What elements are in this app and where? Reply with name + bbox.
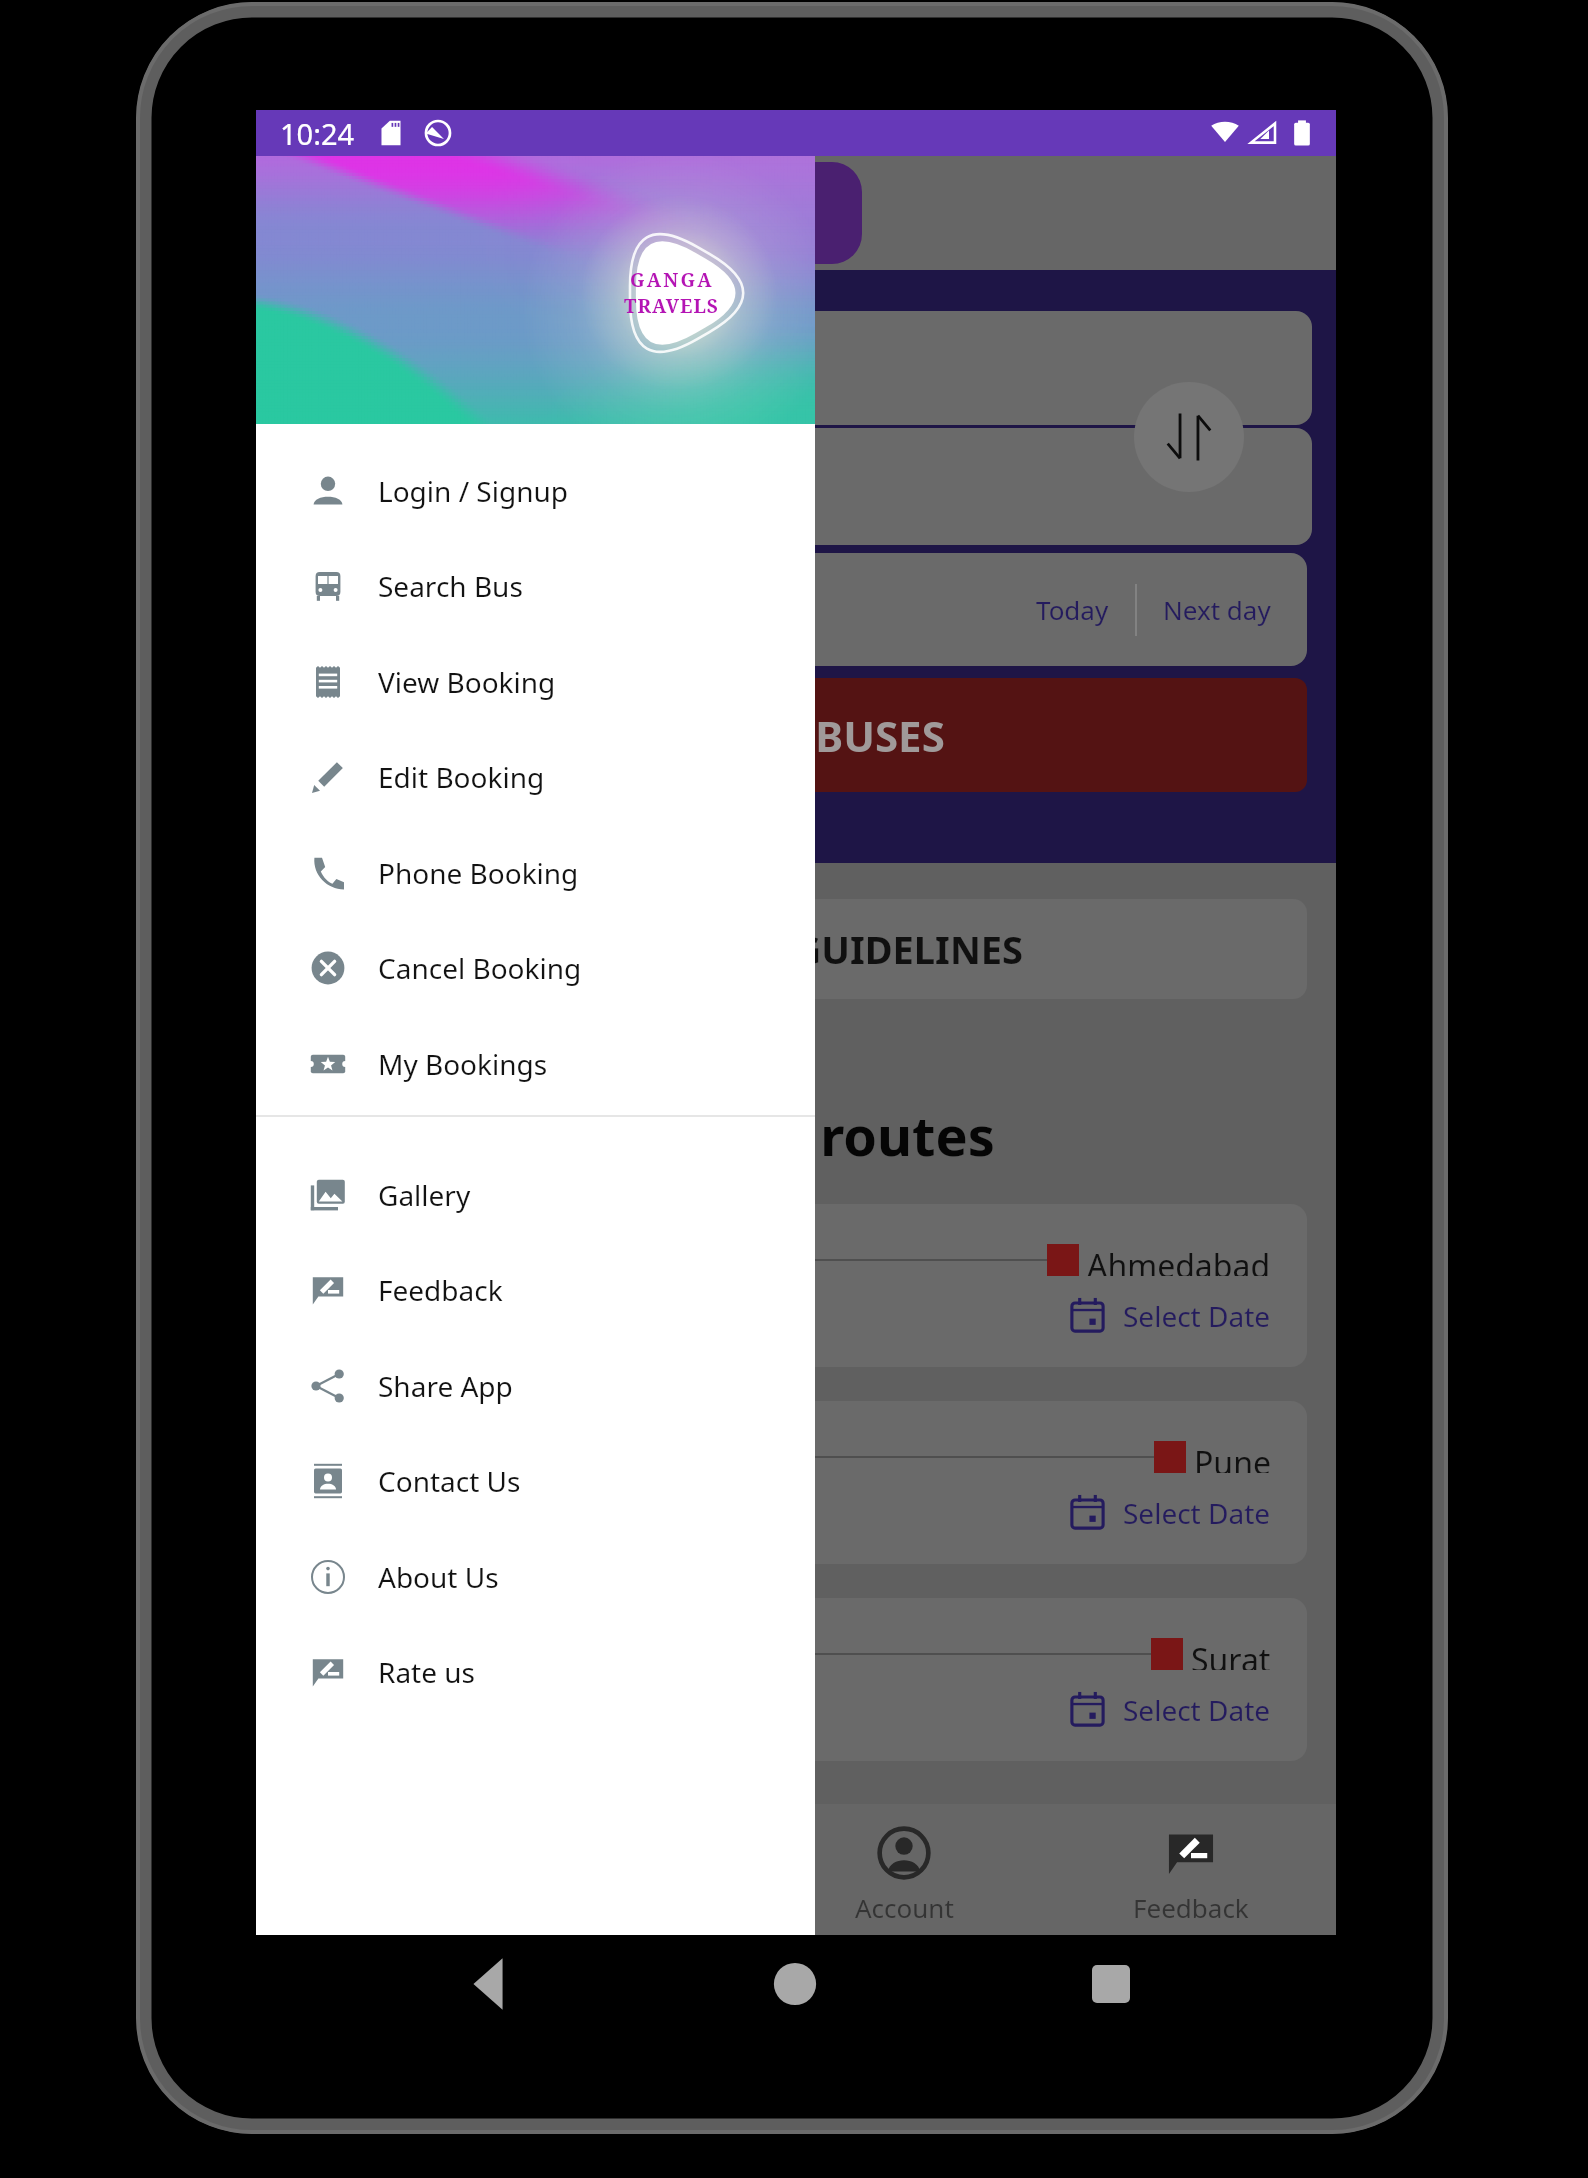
- staticText: Feedback: [378, 1271, 503, 1309]
- staticText: From: [314, 330, 368, 360]
- staticText: Cancel Booking: [378, 949, 582, 987]
- staticText: SEARCH BUSES: [642, 707, 945, 764]
- button[interactable]: Next day: [1151, 582, 1283, 637]
- staticText: Gallery: [378, 1176, 471, 1214]
- button[interactable]: Account: [814, 1824, 994, 1925]
- staticText: Feedback: [1133, 1890, 1249, 1925]
- button[interactable]: Ahmedabad: [280, 1204, 1307, 1367]
- staticText: Share App: [378, 1367, 513, 1405]
- button[interactable]: Phone Booking: [256, 825, 815, 920]
- button[interactable]: Swap source and destination: [1134, 382, 1244, 492]
- staticText: COVID SAFE GUIDELINES: [564, 923, 1024, 975]
- staticText: 10:24: [280, 114, 355, 153]
- button[interactable]: Edit Booking: [256, 729, 815, 824]
- button[interactable]: Select Date: [1068, 1491, 1271, 1534]
- staticText: Contact Us: [378, 1462, 521, 1500]
- button[interactable]: Share App: [256, 1338, 815, 1433]
- button[interactable]: From: [280, 311, 1312, 425]
- button[interactable]: Login / Signup: [256, 443, 815, 538]
- button[interactable]: COVID SAFE GUIDELINES: [280, 899, 1307, 999]
- staticText: Surat: [1191, 1638, 1271, 1670]
- button[interactable]: Open navigation menu: [282, 182, 344, 244]
- staticText: Phone Booking: [378, 854, 579, 892]
- staticText: Next day: [1163, 592, 1271, 627]
- button[interactable]: Surat: [280, 1598, 1307, 1761]
- staticText: Select Date: [1123, 1691, 1271, 1729]
- staticText: Today: [1036, 592, 1109, 627]
- staticText: Select Date: [1123, 1494, 1271, 1532]
- staticText: My Bookings: [378, 1045, 548, 1083]
- staticText: Account: [855, 1890, 954, 1925]
- button[interactable]: Gallery: [256, 1147, 815, 1242]
- button[interactable]: To: [280, 428, 1312, 545]
- staticText: Ganga Travels: [364, 190, 593, 236]
- staticText: Pune: [1194, 1441, 1271, 1473]
- staticText: To: [314, 448, 339, 478]
- staticText: TRAVELS: [624, 293, 719, 319]
- button[interactable]: Select Date: [1068, 1688, 1271, 1731]
- staticText: View Booking: [378, 663, 556, 701]
- staticText: Enter Destination: [314, 484, 560, 525]
- button[interactable]: View Booking: [256, 634, 815, 729]
- staticText: Search Bus: [378, 567, 523, 605]
- button[interactable]: Contact Us: [256, 1433, 815, 1528]
- staticText: Select Date: [1123, 1297, 1271, 1335]
- staticText: About Us: [378, 1558, 499, 1596]
- button[interactable]: Home: [745, 1934, 845, 2034]
- button[interactable]: Rate us: [256, 1624, 815, 1719]
- button[interactable]: SEARCH BUSES: [280, 678, 1307, 792]
- staticText: Popular routes: [597, 1098, 995, 1172]
- staticText: Ahmedabad: [1087, 1244, 1271, 1276]
- button[interactable]: Today: [1024, 582, 1121, 637]
- button[interactable]: Cancel Booking: [256, 920, 815, 1015]
- button[interactable]: Recent apps: [1061, 1934, 1161, 2034]
- button[interactable]: About Us: [256, 1529, 815, 1624]
- staticText: Login / Signup: [378, 472, 568, 510]
- button[interactable]: Back: [438, 1934, 538, 2034]
- button[interactable]: Select Date: [1068, 1294, 1271, 1337]
- button[interactable]: Feedback: [1101, 1824, 1281, 1925]
- button[interactable]: My Bookings: [256, 1016, 815, 1111]
- staticText: Enter Source: [314, 366, 494, 407]
- button[interactable]: Search Bus: [256, 538, 815, 633]
- button[interactable]: Feedback: [256, 1242, 815, 1337]
- staticText: GANGA: [630, 267, 714, 293]
- button[interactable]: Pune: [280, 1401, 1307, 1564]
- staticText: Rate us: [378, 1653, 476, 1691]
- staticText: Edit Booking: [378, 758, 545, 796]
